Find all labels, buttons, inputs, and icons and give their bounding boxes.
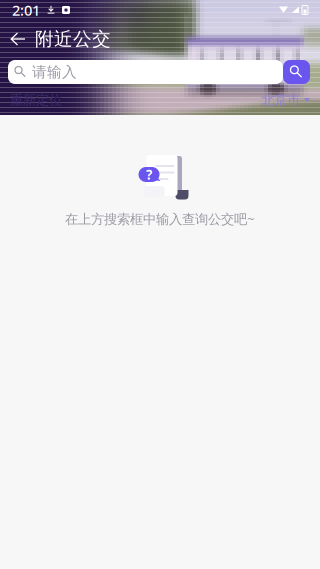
staticText: ? [146, 166, 152, 183]
button[interactable]: 重新定位 [10, 92, 62, 108]
button[interactable]: 北京市 [261, 92, 310, 108]
button[interactable]: Search [283, 60, 310, 84]
staticText: 请输入 [32, 63, 77, 81]
staticText: 附近公交 [35, 27, 111, 50]
staticText: 2:01 [12, 0, 40, 20]
staticText: 北京市 [261, 92, 300, 108]
button[interactable]: Back [10, 32, 26, 46]
staticText: 在上方搜索框中输入查询公交吧~ [65, 210, 255, 228]
staticText: 重新定位 [10, 92, 62, 108]
